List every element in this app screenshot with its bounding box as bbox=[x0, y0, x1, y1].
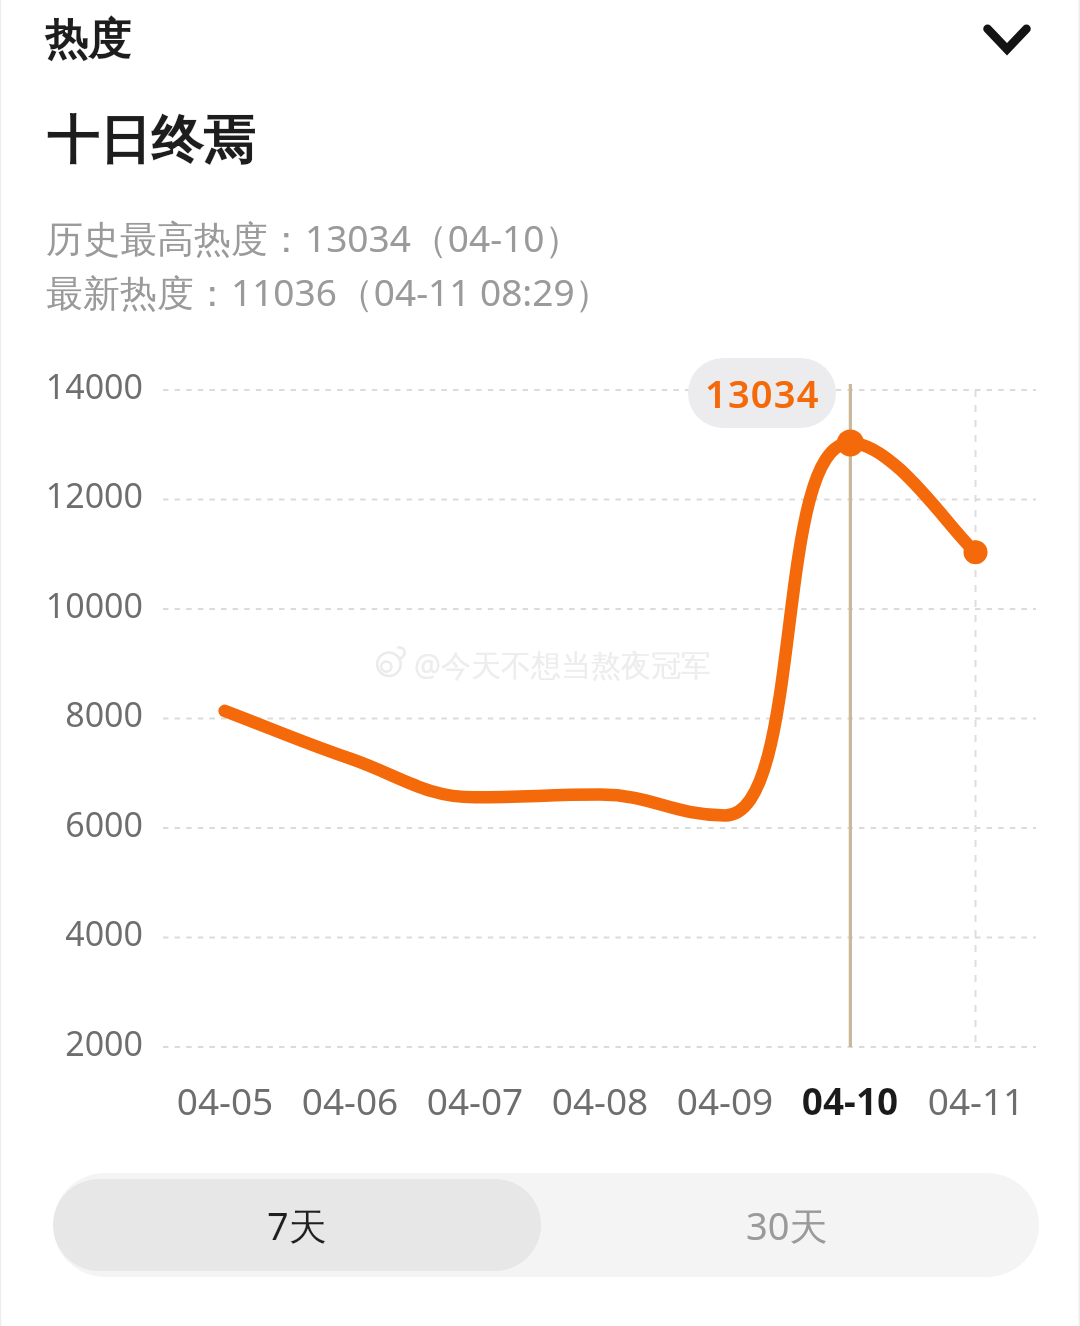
staticText: 30天 bbox=[746, 1199, 828, 1251]
staticText: 2000 bbox=[23, 1020, 143, 1066]
staticText: 6000 bbox=[23, 801, 143, 847]
button[interactable]: 7天 bbox=[53, 1179, 541, 1271]
button[interactable]: Collapse bbox=[967, 0, 1047, 79]
staticText: 热度 bbox=[45, 13, 131, 67]
staticText: 4000 bbox=[23, 910, 143, 956]
staticText: 8000 bbox=[23, 691, 143, 737]
staticText: 04-06 bbox=[280, 1075, 420, 1125]
staticText: 04-07 bbox=[405, 1075, 545, 1125]
staticText: 12000 bbox=[23, 472, 143, 518]
staticText: 13034 bbox=[705, 367, 820, 419]
staticText: 14000 bbox=[23, 363, 143, 409]
staticText: @今天不想当熬夜冠军 bbox=[414, 644, 711, 685]
staticText: 04-10 bbox=[780, 1075, 920, 1125]
staticText: 最新热度：11036（04-11 08:29） bbox=[46, 266, 612, 317]
staticText: 04-08 bbox=[530, 1075, 670, 1125]
staticText: 04-09 bbox=[655, 1075, 795, 1125]
button[interactable]: 30天 bbox=[543, 1179, 1031, 1271]
staticText: 04-11 bbox=[906, 1075, 1046, 1125]
staticText: 十日终焉 bbox=[47, 108, 255, 174]
staticText: 历史最高热度：13034（04-10） bbox=[46, 212, 582, 263]
staticText: 10000 bbox=[23, 582, 143, 628]
staticText: 04-05 bbox=[155, 1075, 295, 1125]
staticText: 7天 bbox=[267, 1199, 327, 1251]
